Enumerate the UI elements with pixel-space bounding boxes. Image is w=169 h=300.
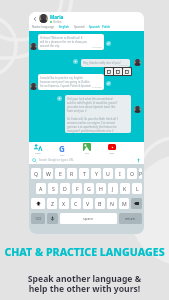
staticText: 11:22 am <box>92 86 102 89</box>
button[interactable]: B <box>95 198 105 209</box>
staticText: Hi there! Welcome to Bizcallout! It <box>40 36 83 40</box>
staticText: G <box>59 143 65 154</box>
staticText: I <box>119 170 121 177</box>
button[interactable]: Z <box>47 198 57 209</box>
button[interactable]: K <box>120 183 130 194</box>
button[interactable]: S <box>48 183 58 194</box>
staticText: D <box>63 185 67 192</box>
button[interactable]: J <box>108 183 118 194</box>
button[interactable]: R <box>67 168 77 179</box>
staticText: CHAT & PRACTICE LANGUAGES <box>0 245 169 259</box>
button[interactable]: P <box>139 168 142 179</box>
staticText: Speak another language & help the other … <box>0 273 169 295</box>
staticText: L <box>136 185 139 192</box>
staticText: X <box>62 200 66 207</box>
button[interactable]: Paste <box>123 68 131 75</box>
button[interactable]: Images <box>83 143 91 155</box>
button[interactable]: Translate <box>34 143 42 155</box>
button[interactable]: Google search <box>59 143 65 156</box>
staticText: Native language <box>32 25 55 29</box>
button[interactable]: Yes! your luck what this ameanhand <box>65 95 131 133</box>
button[interactable]: return <box>119 213 142 224</box>
staticText: B <box>98 200 102 207</box>
staticText: I would like to practice my English <box>40 76 83 80</box>
staticText: Search Google or type a URL <box>39 158 74 162</box>
staticText: Yes! your luck what this ameanhand <box>67 97 113 101</box>
button[interactable]: I would like to practice my English <box>38 74 104 90</box>
button[interactable]: N <box>107 198 117 209</box>
staticText: sub for safe English. It would be great … <box>67 101 118 105</box>
staticText: C <box>74 200 78 207</box>
button[interactable]: F <box>72 183 82 194</box>
button[interactable]: M <box>119 198 129 209</box>
button[interactable]: G <box>84 183 94 194</box>
staticText: K <box>123 185 127 192</box>
staticText: answers earlier on origins. I've served <box>67 121 115 125</box>
button[interactable]: C <box>71 198 81 209</box>
button[interactable]: A <box>36 183 46 194</box>
button[interactable]: 123 <box>31 213 45 224</box>
button[interactable]: H <box>96 183 106 194</box>
staticText: O <box>130 170 135 177</box>
staticText: Spanish <box>89 25 100 29</box>
staticText: A <box>39 185 43 192</box>
staticText: Trans <box>35 152 41 155</box>
staticText: german a to aparlimitely the feature be <box>67 125 117 129</box>
staticText: W <box>46 170 51 177</box>
staticText: Hey, thanks really nice of you! <box>83 61 121 65</box>
button[interactable]: Backspace <box>131 198 142 209</box>
button[interactable]: V <box>83 198 93 209</box>
button[interactable]: Hi there! Welcome to Bizcallout! It <box>38 34 104 50</box>
staticText: 123 <box>35 216 41 221</box>
staticText: inzogram? problems problems a to :) <box>67 129 114 133</box>
staticText: V <box>86 200 90 207</box>
staticText: Spanish <box>74 25 85 29</box>
button[interactable]: YouTube <box>108 143 116 155</box>
button[interactable]: Hey, thanks really nice of you! <box>81 59 130 67</box>
staticText: around the city. <box>40 44 60 48</box>
button[interactable]: O <box>127 168 137 179</box>
staticText: return <box>125 216 136 221</box>
staticText: Maria <box>50 14 64 20</box>
button[interactable]: W <box>43 168 53 179</box>
staticText: 11:20 am <box>92 46 102 49</box>
staticText: Online <box>53 20 62 24</box>
staticText: T <box>83 170 86 177</box>
staticText: P <box>139 170 142 177</box>
staticText: S <box>52 185 55 192</box>
button[interactable]: Q <box>31 168 41 179</box>
button[interactable]: Y <box>91 168 101 179</box>
button[interactable]: E <box>55 168 65 179</box>
staticText: So I take will. So pass the Both think a… <box>67 117 118 121</box>
button[interactable]: Back <box>31 15 38 22</box>
staticText: you select me about Spanish basic like <box>67 105 116 109</box>
staticText: Y <box>95 170 98 177</box>
staticText: N <box>110 200 114 207</box>
button[interactable]: T <box>79 168 89 179</box>
button[interactable]: Voice input <box>47 213 58 224</box>
staticText: E <box>59 170 62 177</box>
staticText: J <box>112 185 114 192</box>
staticText: Goo <box>60 154 65 156</box>
button[interactable]: Shift <box>31 198 45 209</box>
staticText: 11:20 am <box>118 64 128 67</box>
staticText: Q <box>34 170 39 177</box>
staticText: G <box>87 185 91 192</box>
staticText: F <box>76 185 79 192</box>
staticText: Pics <box>85 152 89 155</box>
button[interactable]: X <box>59 198 69 209</box>
staticText: for an Erasmus. I speak Polish & Spanish <box>40 84 92 88</box>
staticText: Polish <box>102 25 111 29</box>
staticText: M <box>122 200 127 207</box>
staticText: from and you :) <box>67 109 87 113</box>
button[interactable]: I <box>115 168 125 179</box>
button[interactable]: D <box>60 183 70 194</box>
button[interactable]: L <box>132 183 142 194</box>
button[interactable]: Copy <box>105 68 113 75</box>
button[interactable]: space <box>60 213 117 224</box>
button[interactable]: Select all <box>114 68 122 75</box>
staticText: will be a pleasure for me to show you <box>40 40 87 44</box>
staticText: English <box>59 25 69 29</box>
button[interactable]: U <box>103 168 113 179</box>
staticText: because next year I am going to Dublin <box>40 80 90 84</box>
